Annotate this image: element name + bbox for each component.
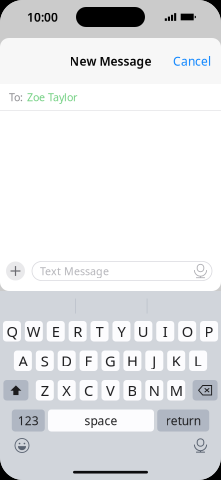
button[interactable]: Text Message — [32, 261, 212, 280]
staticText: J — [152, 351, 156, 370]
staticText: V — [106, 380, 115, 400]
button[interactable]: X — [58, 380, 76, 400]
button[interactable]: 123 — [12, 409, 45, 431]
staticText: return — [166, 412, 201, 428]
staticText: Zoe Taylor — [27, 90, 77, 104]
staticText: F — [85, 351, 93, 370]
button[interactable]: Shift — [3, 380, 28, 400]
button[interactable]: B — [123, 380, 141, 400]
button[interactable]: V — [101, 380, 119, 400]
staticText: P — [205, 321, 214, 341]
staticText: D — [61, 351, 72, 370]
button[interactable]: L — [189, 350, 207, 371]
staticText: K — [172, 351, 181, 370]
staticText: U — [138, 321, 149, 341]
staticText: To: — [9, 90, 23, 104]
staticText: H — [127, 351, 138, 370]
button[interactable]: W — [25, 321, 43, 341]
staticText: Q — [6, 321, 17, 341]
button[interactable]: C — [80, 380, 98, 400]
staticText: G — [105, 351, 116, 370]
staticText: X — [62, 380, 71, 400]
button[interactable]: S — [36, 350, 54, 371]
staticText: Y — [117, 321, 125, 341]
staticText: M — [170, 380, 183, 400]
staticText: C — [84, 380, 93, 400]
button[interactable]: To: — [0, 84, 221, 111]
staticText: R — [73, 321, 82, 341]
staticText: New Message — [69, 53, 151, 69]
button[interactable]: O — [178, 321, 196, 341]
button[interactable]: U — [134, 321, 152, 341]
staticText: S — [41, 351, 49, 370]
staticText: 123 — [18, 412, 39, 428]
button[interactable]: F — [80, 350, 98, 371]
staticText: 10:00 — [27, 9, 58, 25]
button[interactable]: Z — [36, 380, 54, 400]
button[interactable]: D — [58, 350, 76, 371]
button[interactable]: T — [90, 321, 108, 341]
button[interactable]: A — [14, 350, 32, 371]
staticText: Z — [41, 380, 49, 400]
button[interactable]: M — [167, 380, 185, 400]
button[interactable]: N — [145, 380, 163, 400]
button[interactable]: I — [156, 321, 174, 341]
button[interactable]: Dictation — [195, 438, 206, 453]
staticText: A — [18, 351, 27, 370]
button[interactable]: Y — [112, 321, 130, 341]
button[interactable]: G — [101, 350, 119, 371]
staticText: E — [52, 321, 60, 341]
button[interactable]: J — [145, 350, 163, 371]
button[interactable]: Emoji keyboard — [15, 438, 29, 452]
staticText: B — [127, 380, 137, 400]
staticText: Text Message — [40, 264, 109, 278]
button[interactable]: H — [123, 350, 141, 371]
button[interactable]: Delete — [193, 380, 218, 400]
button[interactable]: Cancel — [165, 47, 221, 75]
button[interactable]: K — [167, 350, 185, 371]
button[interactable]: space — [48, 409, 154, 431]
staticText: L — [194, 351, 202, 370]
button[interactable]: return — [157, 409, 209, 431]
staticText: O — [182, 321, 193, 341]
button[interactable]: R — [69, 321, 87, 341]
staticText: N — [149, 380, 160, 400]
staticText: W — [27, 321, 41, 341]
button[interactable]: Add attachment — [6, 261, 25, 280]
button[interactable]: P — [200, 321, 218, 341]
staticText: T — [95, 321, 103, 341]
button[interactable]: Q — [3, 321, 21, 341]
button[interactable]: E — [47, 321, 65, 341]
staticText: I — [163, 321, 168, 341]
staticText: Cancel — [173, 53, 211, 69]
staticText: space — [84, 412, 117, 428]
